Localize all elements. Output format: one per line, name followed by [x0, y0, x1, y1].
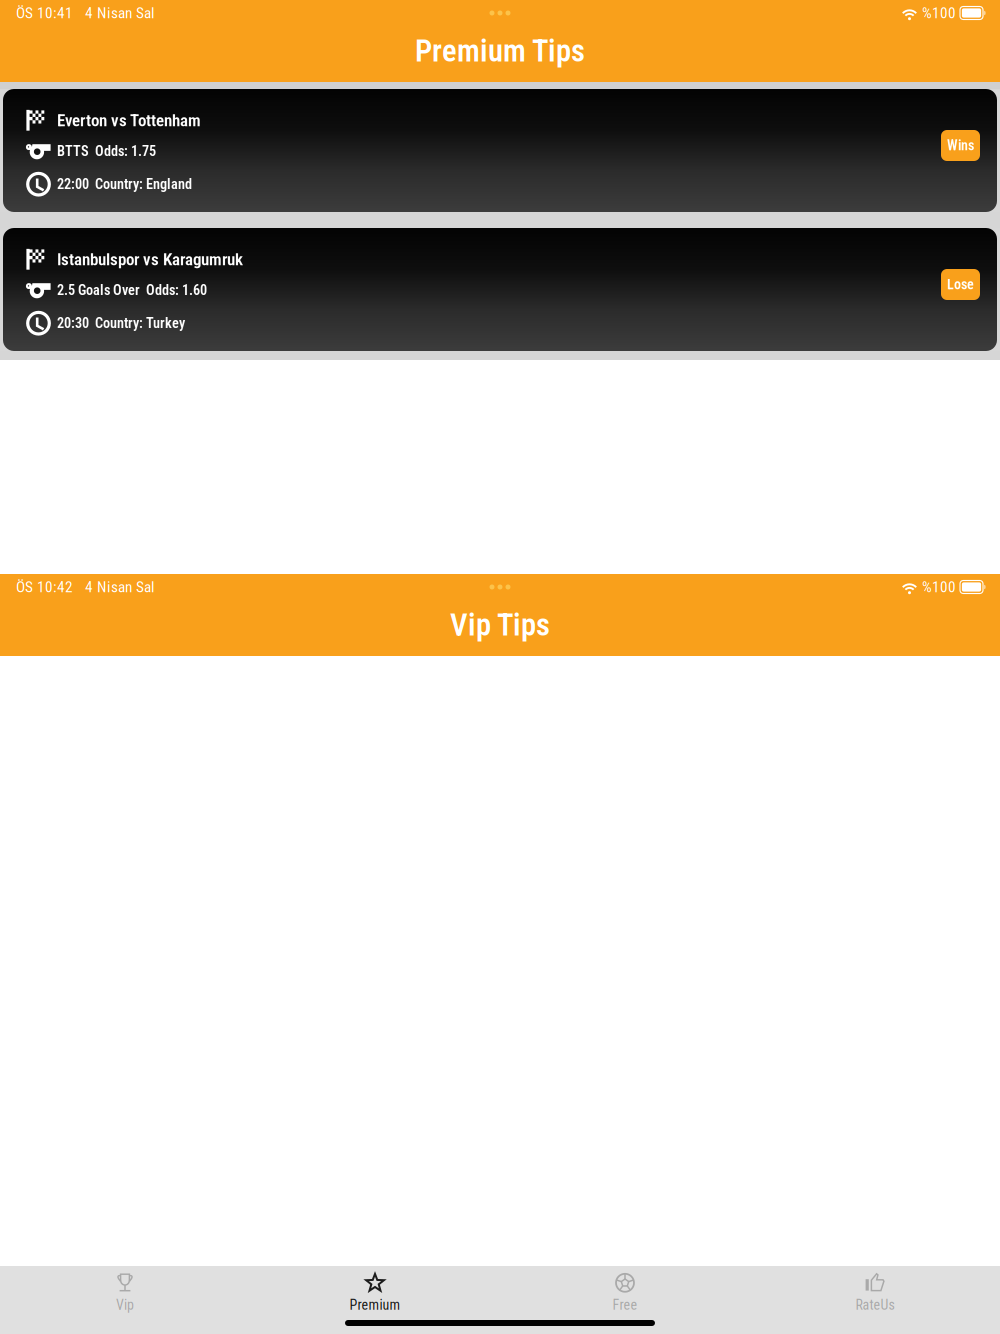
staticText: Lose — [947, 276, 974, 293]
staticText: ÖS 10:42 4 Nisan Sal — [16, 578, 155, 596]
staticText: Everton vs Tottenham — [57, 111, 201, 130]
button[interactable]: Vip — [0, 1265, 250, 1321]
staticText: 2.5 Goals Over Odds: 1.60 — [57, 282, 207, 298]
button[interactable]: Free — [500, 1265, 750, 1321]
staticText: Vip — [116, 1297, 134, 1313]
staticText: Premium Tips — [415, 33, 585, 69]
staticText: BTTS Odds: 1.75 — [57, 143, 156, 159]
staticText: 20:30 Country: Turkey — [57, 315, 185, 331]
staticText: %100 — [922, 578, 956, 596]
staticText: Free — [612, 1297, 637, 1313]
staticText: Istanbulspor vs Karagumruk — [57, 250, 243, 269]
staticText: Premium — [349, 1297, 400, 1313]
staticText: RateUs — [855, 1297, 894, 1313]
staticText: Vip Tips — [450, 607, 550, 643]
staticText: ÖS 10:41 4 Nisan Sal — [16, 4, 155, 22]
staticText: %100 — [922, 4, 956, 22]
staticText: 22:00 Country: England — [57, 176, 192, 192]
button[interactable]: Premium — [250, 1265, 500, 1321]
button[interactable]: Istanbulspor vs Karagumruk — [3, 228, 997, 351]
button[interactable]: RateUs — [750, 1265, 1000, 1321]
button[interactable]: Everton vs Tottenham — [3, 89, 997, 212]
staticText: Wins — [947, 137, 974, 154]
